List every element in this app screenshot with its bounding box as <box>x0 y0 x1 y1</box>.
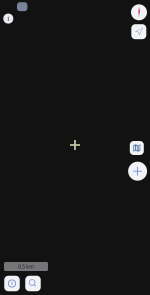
button[interactable]: Settings <box>4 276 20 291</box>
button[interactable]: Current Location <box>131 24 146 39</box>
button[interactable]: Zoom In <box>128 162 147 181</box>
staticText: 0.5 km <box>18 263 34 270</box>
button[interactable]: Search <box>25 276 41 291</box>
button[interactable]: Compass <box>131 4 147 20</box>
button[interactable]: Map Type <box>130 141 144 155</box>
